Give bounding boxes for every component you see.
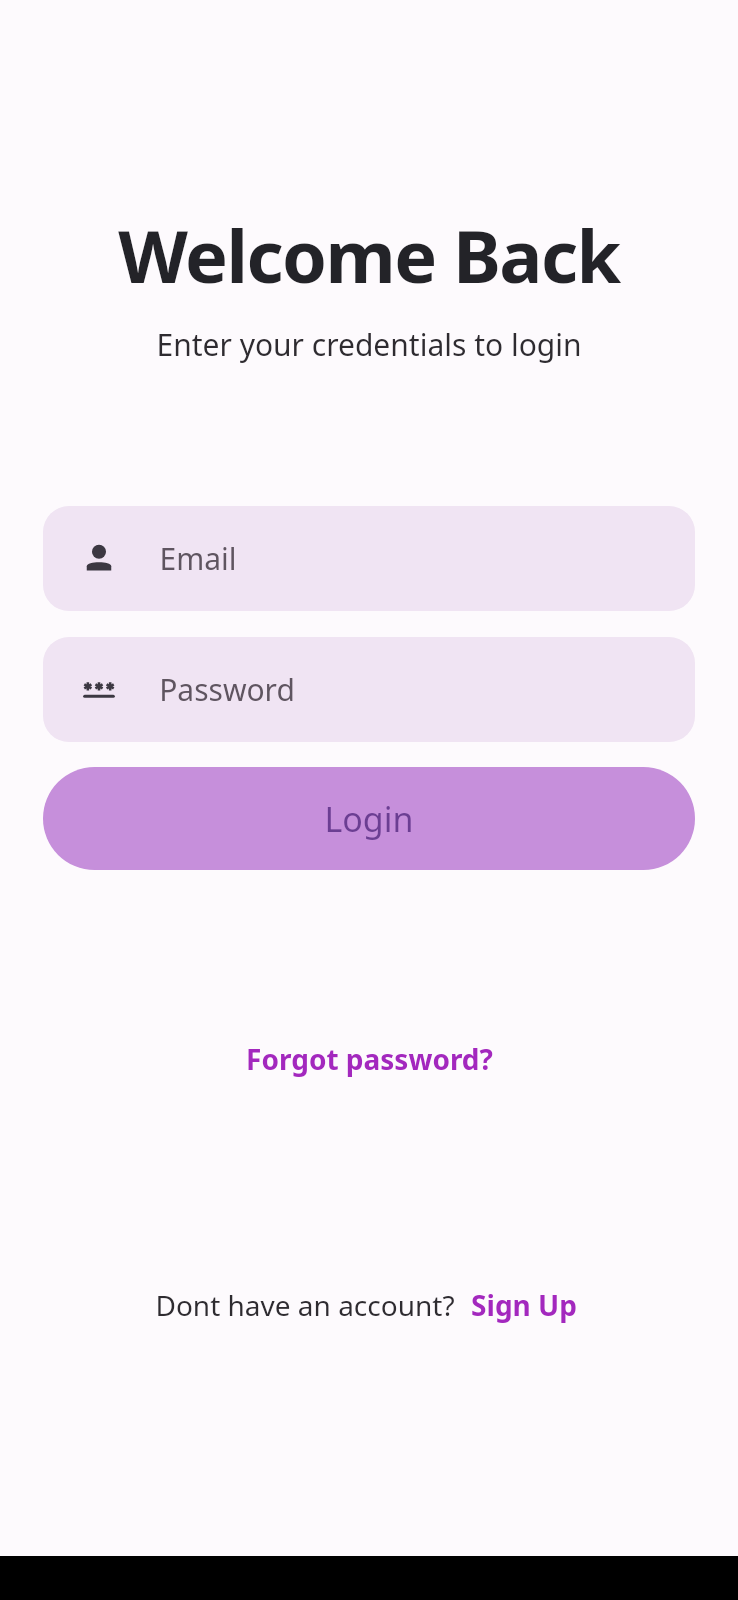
button[interactable]: Password [43,637,695,742]
staticText: Enter your credentials to login [156,324,582,365]
staticText: Sign Up [471,1286,577,1324]
button[interactable]: Login [43,767,695,870]
staticText: Dont have an account? [155,1286,455,1324]
staticText: Forgot password? [246,1040,493,1078]
button[interactable]: Email [43,506,695,611]
staticText: Welcome Back [118,206,620,304]
other: Email [81,541,117,577]
other: Password [81,672,117,708]
staticText: Email [159,538,237,579]
button[interactable]: Sign Up [465,1282,583,1328]
staticText: Login [324,796,414,842]
staticText: Password [159,669,295,710]
button[interactable]: Forgot password? [236,1034,503,1084]
